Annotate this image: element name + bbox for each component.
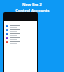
button[interactable] [4,32,37,36]
button[interactable] [4,28,37,32]
button[interactable] [4,40,37,44]
staticText: Control Accounts [15,8,50,13]
button[interactable] [4,36,37,40]
button[interactable] [4,24,37,28]
staticText: New Era 2 [22,2,42,7]
